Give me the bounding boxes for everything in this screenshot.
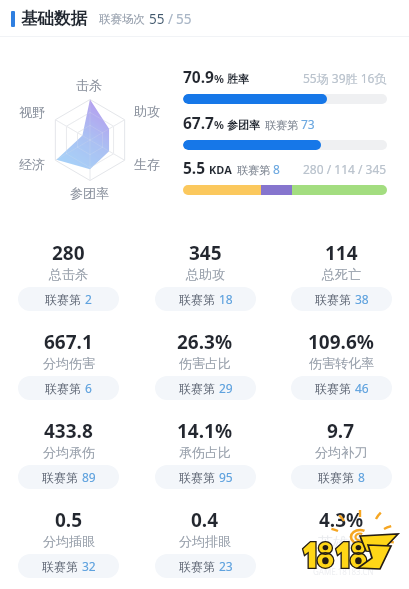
staticText: 击杀	[76, 77, 102, 93]
staticText: 29	[219, 380, 233, 396]
staticText: 0.5	[55, 507, 83, 533]
staticText: 总助攻	[186, 266, 225, 282]
staticText: 联赛第	[179, 558, 219, 574]
staticText: 生存	[134, 156, 160, 172]
staticText: 参团率	[70, 185, 109, 201]
button[interactable]: 联赛第	[291, 287, 392, 311]
button[interactable]: 345	[137, 240, 273, 320]
staticText: 8	[273, 161, 280, 177]
staticText: 联赛第	[179, 291, 219, 307]
button[interactable]: 4.3%	[273, 507, 409, 587]
staticText: 助攻	[134, 103, 160, 119]
staticText: 89	[82, 469, 96, 485]
staticText: 联赛第	[45, 380, 85, 396]
staticText: 分均伤害	[43, 355, 95, 371]
button[interactable]: 联赛第	[155, 287, 256, 311]
staticText: 4.3%	[319, 507, 364, 533]
staticText: %	[214, 71, 224, 86]
staticText: 英雄游	[318, 534, 363, 553]
staticText: 联赛第	[318, 469, 358, 485]
button[interactable]: 联赛第	[291, 376, 392, 400]
staticText: 345	[189, 240, 222, 266]
staticText: 基础数据	[21, 8, 87, 29]
staticText: 联赛第	[42, 558, 82, 574]
button[interactable]: 联赛第	[18, 554, 119, 578]
button[interactable]: 26.3%	[137, 329, 273, 409]
staticText: 70.9	[183, 66, 214, 87]
staticText: 55场 39胜 16负	[303, 70, 387, 86]
staticText: KDA	[209, 162, 232, 177]
staticText: 46	[355, 380, 369, 396]
staticText: GAME.18183.CN	[313, 566, 374, 577]
button[interactable]: 70.9	[183, 66, 387, 106]
staticText: 分均插眼	[43, 533, 95, 549]
button[interactable]: 联赛第	[18, 287, 119, 311]
staticText: 667.1	[44, 329, 93, 355]
button[interactable]: 14.1%	[137, 418, 273, 498]
staticText: 联赛第	[179, 469, 219, 485]
staticText: 32	[82, 558, 96, 574]
staticText: 伤害转化率	[309, 355, 374, 371]
staticText: 95	[219, 469, 233, 485]
staticText: 参团率	[227, 118, 260, 132]
staticText: /	[168, 10, 174, 28]
staticText: 经济	[19, 156, 45, 172]
staticText: 视野	[19, 104, 45, 120]
staticText: 6	[85, 380, 92, 396]
staticText: %	[214, 117, 224, 132]
staticText: 总击杀	[49, 266, 88, 282]
staticText: 承伤占比	[179, 444, 231, 460]
staticText: 114	[325, 240, 358, 266]
staticText: 伤害占比	[179, 355, 231, 371]
staticText: 55	[149, 10, 165, 28]
staticText: 总死亡	[322, 266, 361, 282]
staticText: 联赛第	[265, 118, 298, 132]
staticText: 分均排眼	[179, 533, 231, 549]
button[interactable]: 0.4	[137, 507, 273, 587]
staticText: 联赛第	[237, 163, 270, 177]
staticText: 0.4	[191, 507, 219, 533]
staticText: 280	[52, 240, 85, 266]
staticText: 67.7	[183, 112, 214, 133]
staticText: 14.1%	[177, 418, 233, 444]
button[interactable]: 5.5	[183, 157, 387, 197]
staticText: 联赛第	[315, 291, 355, 307]
staticText: 联赛第	[45, 291, 85, 307]
button[interactable]: 280	[0, 240, 137, 320]
staticText: 联赛场次	[99, 12, 145, 26]
staticText: 26.3%	[177, 329, 233, 355]
staticText: 2	[85, 291, 92, 307]
button[interactable]: 联赛第	[291, 465, 392, 489]
staticText: 9.7	[327, 418, 355, 444]
button[interactable]: 114	[273, 240, 409, 320]
button[interactable]: 联赛第	[155, 465, 256, 489]
button[interactable]: 109.6%	[273, 329, 409, 409]
staticText: 联赛第	[315, 380, 355, 396]
button[interactable]: 433.8	[0, 418, 137, 498]
staticText: 55	[176, 10, 192, 28]
staticText: 分均补刀	[315, 444, 367, 460]
staticText: 73	[301, 116, 315, 132]
staticText: 联赛第	[179, 380, 219, 396]
staticText: 38	[355, 291, 369, 307]
button[interactable]: 0.5	[0, 507, 137, 587]
staticText: 胜率	[227, 72, 249, 86]
staticText: 433.8	[44, 418, 93, 444]
button[interactable]: 联赛第	[18, 465, 119, 489]
staticText: 109.6%	[308, 329, 374, 355]
staticText: 5.5	[183, 157, 206, 178]
button[interactable]: 667.1	[0, 329, 137, 409]
button[interactable]: 联赛第	[155, 554, 256, 578]
staticText: 23	[219, 558, 233, 574]
button[interactable]: 9.7	[273, 418, 409, 498]
staticText: 联赛第	[42, 469, 82, 485]
staticText: 18	[219, 291, 233, 307]
button[interactable]: 联赛第	[155, 376, 256, 400]
button[interactable]: 67.7	[183, 112, 387, 152]
staticText: 8	[358, 469, 365, 485]
staticText: 280 / 114 / 345	[303, 161, 387, 177]
button[interactable]: 基础数据	[11, 0, 409, 37]
staticText: 分均承伤	[43, 444, 95, 460]
button[interactable]: 联赛第	[18, 376, 119, 400]
